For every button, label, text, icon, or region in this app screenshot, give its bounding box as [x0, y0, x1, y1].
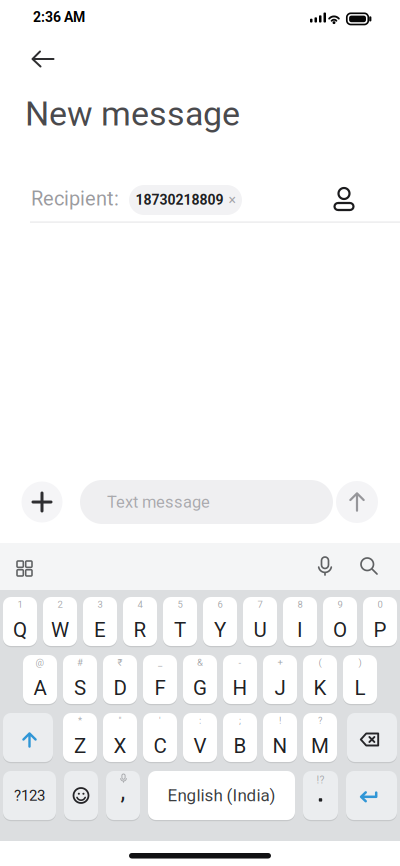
- staticText: F: [154, 676, 165, 700]
- button[interactable]: (: [303, 655, 337, 704]
- button[interactable]: _: [143, 655, 177, 704]
- staticText: 0: [377, 599, 382, 610]
- staticText: 4: [137, 599, 142, 610]
- staticText: :: [199, 715, 201, 726]
- button[interactable]: English (India): [148, 771, 295, 820]
- staticText: ': [159, 715, 161, 726]
- staticText: C: [153, 734, 166, 758]
- button[interactable]: &: [183, 655, 217, 704]
- button[interactable]: ;: [223, 713, 257, 762]
- button[interactable]: ,: [106, 771, 140, 820]
- staticText: 18730218809: [135, 192, 223, 208]
- button[interactable]: 2: [43, 597, 77, 646]
- staticText: New message: [25, 94, 240, 134]
- staticText: ): [358, 657, 361, 668]
- staticText: _: [158, 657, 162, 668]
- button[interactable]: @: [23, 655, 57, 704]
- button[interactable]: *: [63, 713, 97, 762]
- staticText: E: [94, 618, 106, 642]
- staticText: W: [51, 618, 69, 642]
- staticText: O: [333, 618, 347, 642]
- staticText: ?: [318, 715, 322, 726]
- staticText: *: [78, 715, 82, 726]
- staticText: English (India): [167, 785, 275, 805]
- button[interactable]: -: [223, 655, 257, 704]
- staticText: V: [193, 734, 206, 758]
- staticText: B: [233, 734, 246, 758]
- staticText: &: [197, 657, 203, 668]
- button[interactable]: :: [183, 713, 217, 762]
- staticText: ": [118, 715, 121, 726]
- button[interactable]: 3: [83, 597, 117, 646]
- staticText: ?123: [14, 787, 45, 804]
- button[interactable]: +: [263, 655, 297, 704]
- button[interactable]: 8: [283, 597, 317, 646]
- staticText: Y: [214, 618, 226, 642]
- button[interactable]: 9: [323, 597, 357, 646]
- button[interactable]: [361, 558, 378, 575]
- button[interactable]: #: [63, 655, 97, 704]
- staticText: R: [133, 618, 146, 642]
- staticText: K: [313, 676, 326, 700]
- button[interactable]: 7: [243, 597, 277, 646]
- staticText: Q: [13, 618, 27, 642]
- staticText: S: [74, 676, 86, 700]
- button[interactable]: 6: [203, 597, 237, 646]
- staticText: L: [354, 676, 365, 700]
- button[interactable]: 1: [3, 597, 37, 646]
- button[interactable]: ': [143, 713, 177, 762]
- button[interactable]: !?: [303, 771, 338, 820]
- staticText: T: [174, 618, 186, 642]
- button[interactable]: ?: [303, 713, 337, 762]
- staticText: ;: [239, 715, 241, 726]
- staticText: P: [373, 618, 386, 642]
- staticText: I: [297, 618, 303, 642]
- staticText: Recipient:: [31, 187, 119, 210]
- button[interactable]: [64, 771, 98, 820]
- staticText: 1: [17, 599, 22, 610]
- button[interactable]: 4: [123, 597, 157, 646]
- staticText: U: [253, 618, 266, 642]
- staticText: J: [274, 676, 285, 700]
- staticText: 6: [217, 599, 222, 610]
- staticText: M: [311, 734, 329, 758]
- staticText: +: [277, 657, 282, 668]
- staticText: A: [33, 676, 46, 700]
- staticText: -: [238, 657, 241, 668]
- button[interactable]: [3, 713, 53, 762]
- staticText: 3: [97, 599, 102, 610]
- button[interactable]: ): [343, 655, 377, 704]
- button[interactable]: Text message: [80, 480, 333, 524]
- staticText: #: [77, 657, 83, 668]
- staticText: ,: [120, 777, 125, 806]
- button[interactable]: 5: [163, 597, 197, 646]
- staticText: ×: [228, 192, 235, 208]
- button[interactable]: ₹: [103, 655, 137, 704]
- button[interactable]: ": [103, 713, 137, 762]
- button[interactable]: [332, 186, 356, 212]
- staticText: G: [193, 676, 207, 700]
- staticText: !?: [316, 774, 324, 786]
- staticText: Z: [74, 734, 86, 758]
- staticText: 9: [337, 599, 342, 610]
- staticText: 2:36 AM: [33, 9, 85, 25]
- staticText: @: [35, 657, 44, 668]
- button[interactable]: [346, 771, 397, 820]
- staticText: 7: [257, 599, 262, 610]
- button[interactable]: ?123: [3, 771, 56, 820]
- button[interactable]: [347, 713, 397, 762]
- staticText: Text message: [107, 492, 210, 512]
- button[interactable]: [318, 557, 332, 576]
- staticText: (: [318, 657, 321, 668]
- staticText: 2: [57, 599, 62, 610]
- button[interactable]: [17, 561, 33, 577]
- staticText: 8: [297, 599, 302, 610]
- button[interactable]: 18730218809: [129, 185, 242, 215]
- button[interactable]: 0: [363, 597, 397, 646]
- button[interactable]: [31, 49, 59, 69]
- button[interactable]: [336, 481, 378, 523]
- staticText: X: [113, 734, 126, 758]
- button[interactable]: !: [263, 713, 297, 762]
- button[interactable]: [21, 481, 62, 522]
- staticText: H: [232, 676, 247, 700]
